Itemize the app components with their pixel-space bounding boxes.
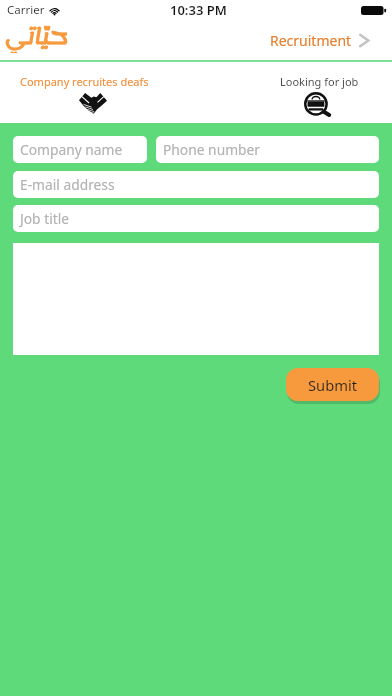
staticText: E-mail address — [20, 175, 115, 194]
staticText: Phone number — [163, 140, 261, 159]
other: Company recruits deafs — [79, 92, 107, 114]
button[interactable]: Recruitment — [264, 32, 392, 51]
button[interactable]: Looking for job — [196, 62, 392, 123]
staticText: Job title — [20, 209, 70, 228]
button[interactable]: Job title — [13, 205, 379, 232]
staticText: Submit — [308, 375, 357, 395]
button[interactable]: Phone number — [156, 136, 379, 163]
staticText: Carrier — [7, 2, 45, 18]
staticText: Company name — [20, 140, 123, 159]
staticText: Recruitment — [270, 31, 352, 50]
staticText: 10:33 PM — [170, 1, 227, 19]
button[interactable]: Submit — [286, 368, 379, 401]
other: Looking for job — [305, 94, 331, 116]
staticText: Company recruites deafs — [20, 74, 149, 89]
staticText: Looking for job — [280, 74, 359, 89]
button[interactable]: Company recruites deafs — [0, 62, 196, 123]
button[interactable]: E-mail address — [13, 171, 379, 198]
staticText: حيّاتي — [5, 15, 69, 53]
button[interactable]: Company name — [13, 136, 147, 163]
